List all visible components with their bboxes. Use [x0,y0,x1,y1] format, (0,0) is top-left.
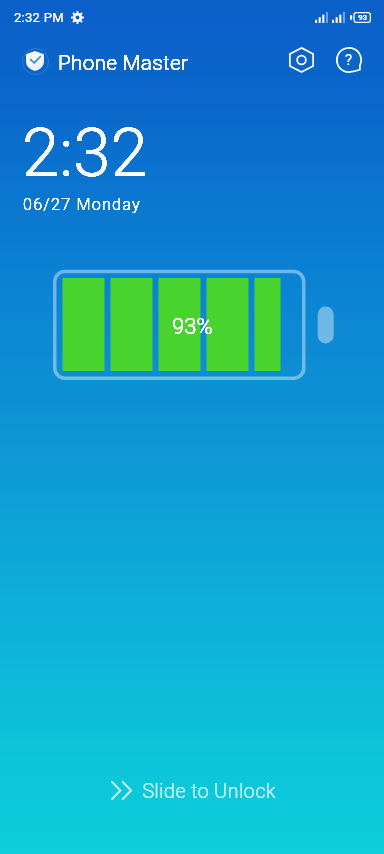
staticText: 93 [358,13,368,22]
staticText: Phone Master [58,51,189,75]
staticText: 93% [172,314,213,340]
button[interactable]: Phone Master [20,46,189,76]
staticText: Slide to Unlock [142,779,276,803]
staticText: ? [345,51,353,69]
staticText: 06/27 Monday [23,195,141,214]
staticText: Slide to Unlock [142,779,276,803]
staticText: 2:32 [22,114,148,193]
staticText: 2:32 PM [14,10,64,25]
button[interactable]: Help [330,39,368,81]
staticText: 93% [172,314,213,340]
staticText: 2:32 [22,114,148,193]
staticText: Slide to Unlock [142,779,276,803]
staticText: 93% [172,314,213,340]
button[interactable]: Slide to Unlock [0,746,384,835]
staticText: 2:32 [22,114,148,193]
staticText: Phone Master [58,51,189,75]
staticText: Phone Master [58,51,189,75]
button[interactable]: Boost [282,39,320,81]
staticText: 06/27 Monday [23,195,141,214]
